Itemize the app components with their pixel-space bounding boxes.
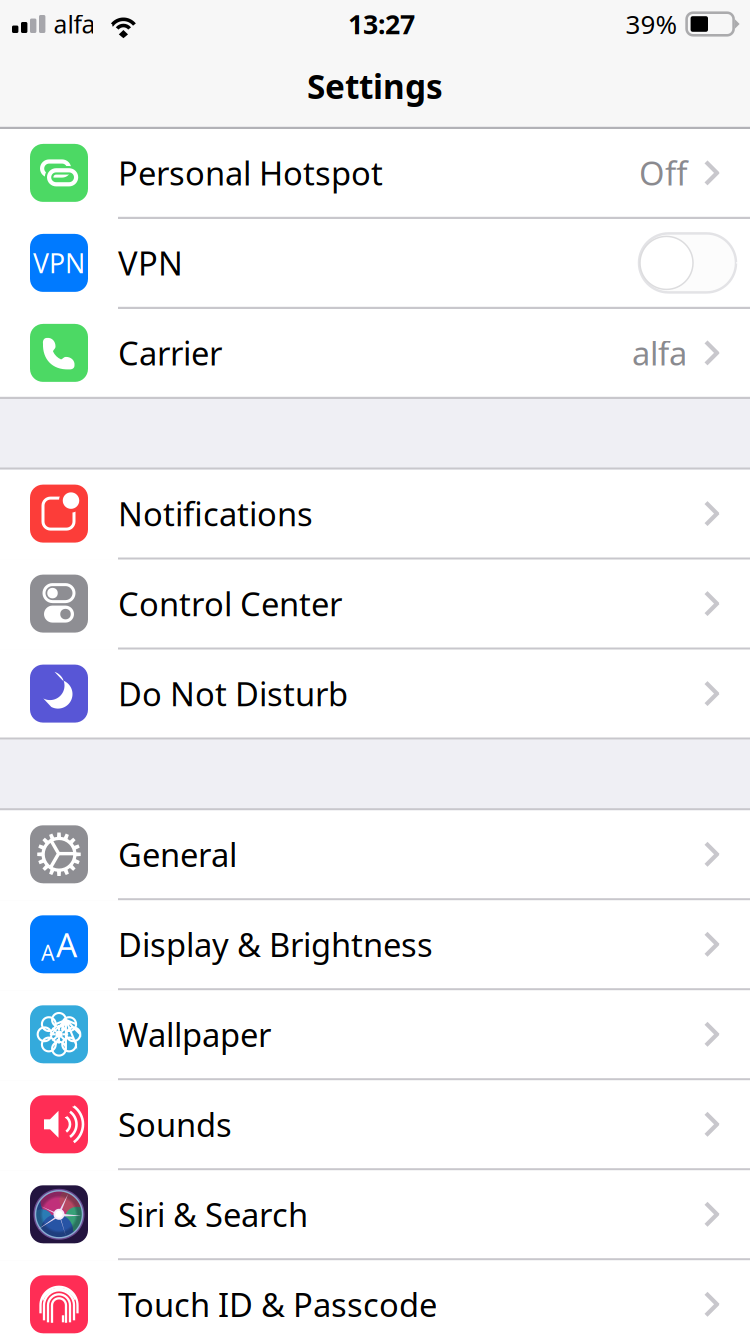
staticText: Carrier <box>118 331 222 375</box>
staticText: Settings <box>307 63 443 109</box>
staticText: VPN <box>118 241 183 285</box>
button[interactable]: Do Not Disturb <box>0 650 750 740</box>
button[interactable]: A <box>0 900 750 990</box>
button[interactable]: Touch ID & Passcode <box>0 1260 750 1334</box>
button[interactable]: Personal Hotspot <box>0 129 750 219</box>
staticText: Wallpaper <box>118 1012 271 1057</box>
staticText: VPN <box>33 245 85 281</box>
staticText: Notifications <box>118 491 313 536</box>
button[interactable]: VPN <box>0 219 750 309</box>
staticText: Control Center <box>118 581 342 626</box>
staticText: Do Not Disturb <box>118 671 348 716</box>
staticText: Display & Brightness <box>118 922 433 967</box>
staticText: 39% <box>626 6 678 42</box>
button[interactable]: Siri & Search <box>0 1170 750 1260</box>
staticText: Personal Hotspot <box>118 151 383 195</box>
button[interactable]: Wallpaper <box>0 990 750 1080</box>
button[interactable]: Carrier <box>0 309 750 399</box>
staticText: Off <box>639 151 687 195</box>
button[interactable]: Control Center <box>0 560 750 650</box>
staticText: alfa <box>53 7 95 41</box>
button[interactable]: General <box>0 810 750 900</box>
button[interactable]: Notifications <box>0 470 750 560</box>
staticText: Sounds <box>118 1102 232 1147</box>
staticText: 13:27 <box>348 6 415 42</box>
button[interactable]: Sounds <box>0 1080 750 1170</box>
staticText: Touch ID & Passcode <box>118 1282 437 1327</box>
staticText: A <box>56 922 77 967</box>
staticText: A <box>41 938 55 967</box>
staticText: alfa <box>632 331 687 375</box>
staticText: General <box>118 832 237 877</box>
staticText: Siri & Search <box>118 1192 308 1237</box>
